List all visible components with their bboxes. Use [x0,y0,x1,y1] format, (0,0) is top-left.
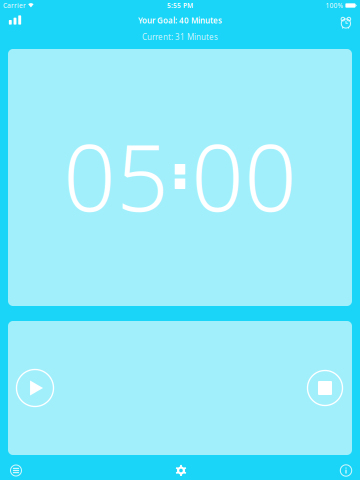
staticText: 100% [325,1,343,10]
staticText: Your Goal: 40 Minutes [138,15,222,26]
staticText: Current: 31 Minutes [142,32,218,42]
button[interactable]: Start [8,361,62,415]
staticText: 00 [191,114,297,237]
button[interactable]: Settings [161,458,201,480]
button[interactable]: Statistics [0,7,30,33]
button[interactable]: Stop [298,361,352,415]
button[interactable]: Alarm [333,11,359,35]
button[interactable]: History [0,458,32,480]
staticText: Carrier [3,1,26,10]
button[interactable]: Info [330,458,360,480]
staticText: 5:55 PM [167,1,193,10]
staticText: 05 [63,114,169,237]
